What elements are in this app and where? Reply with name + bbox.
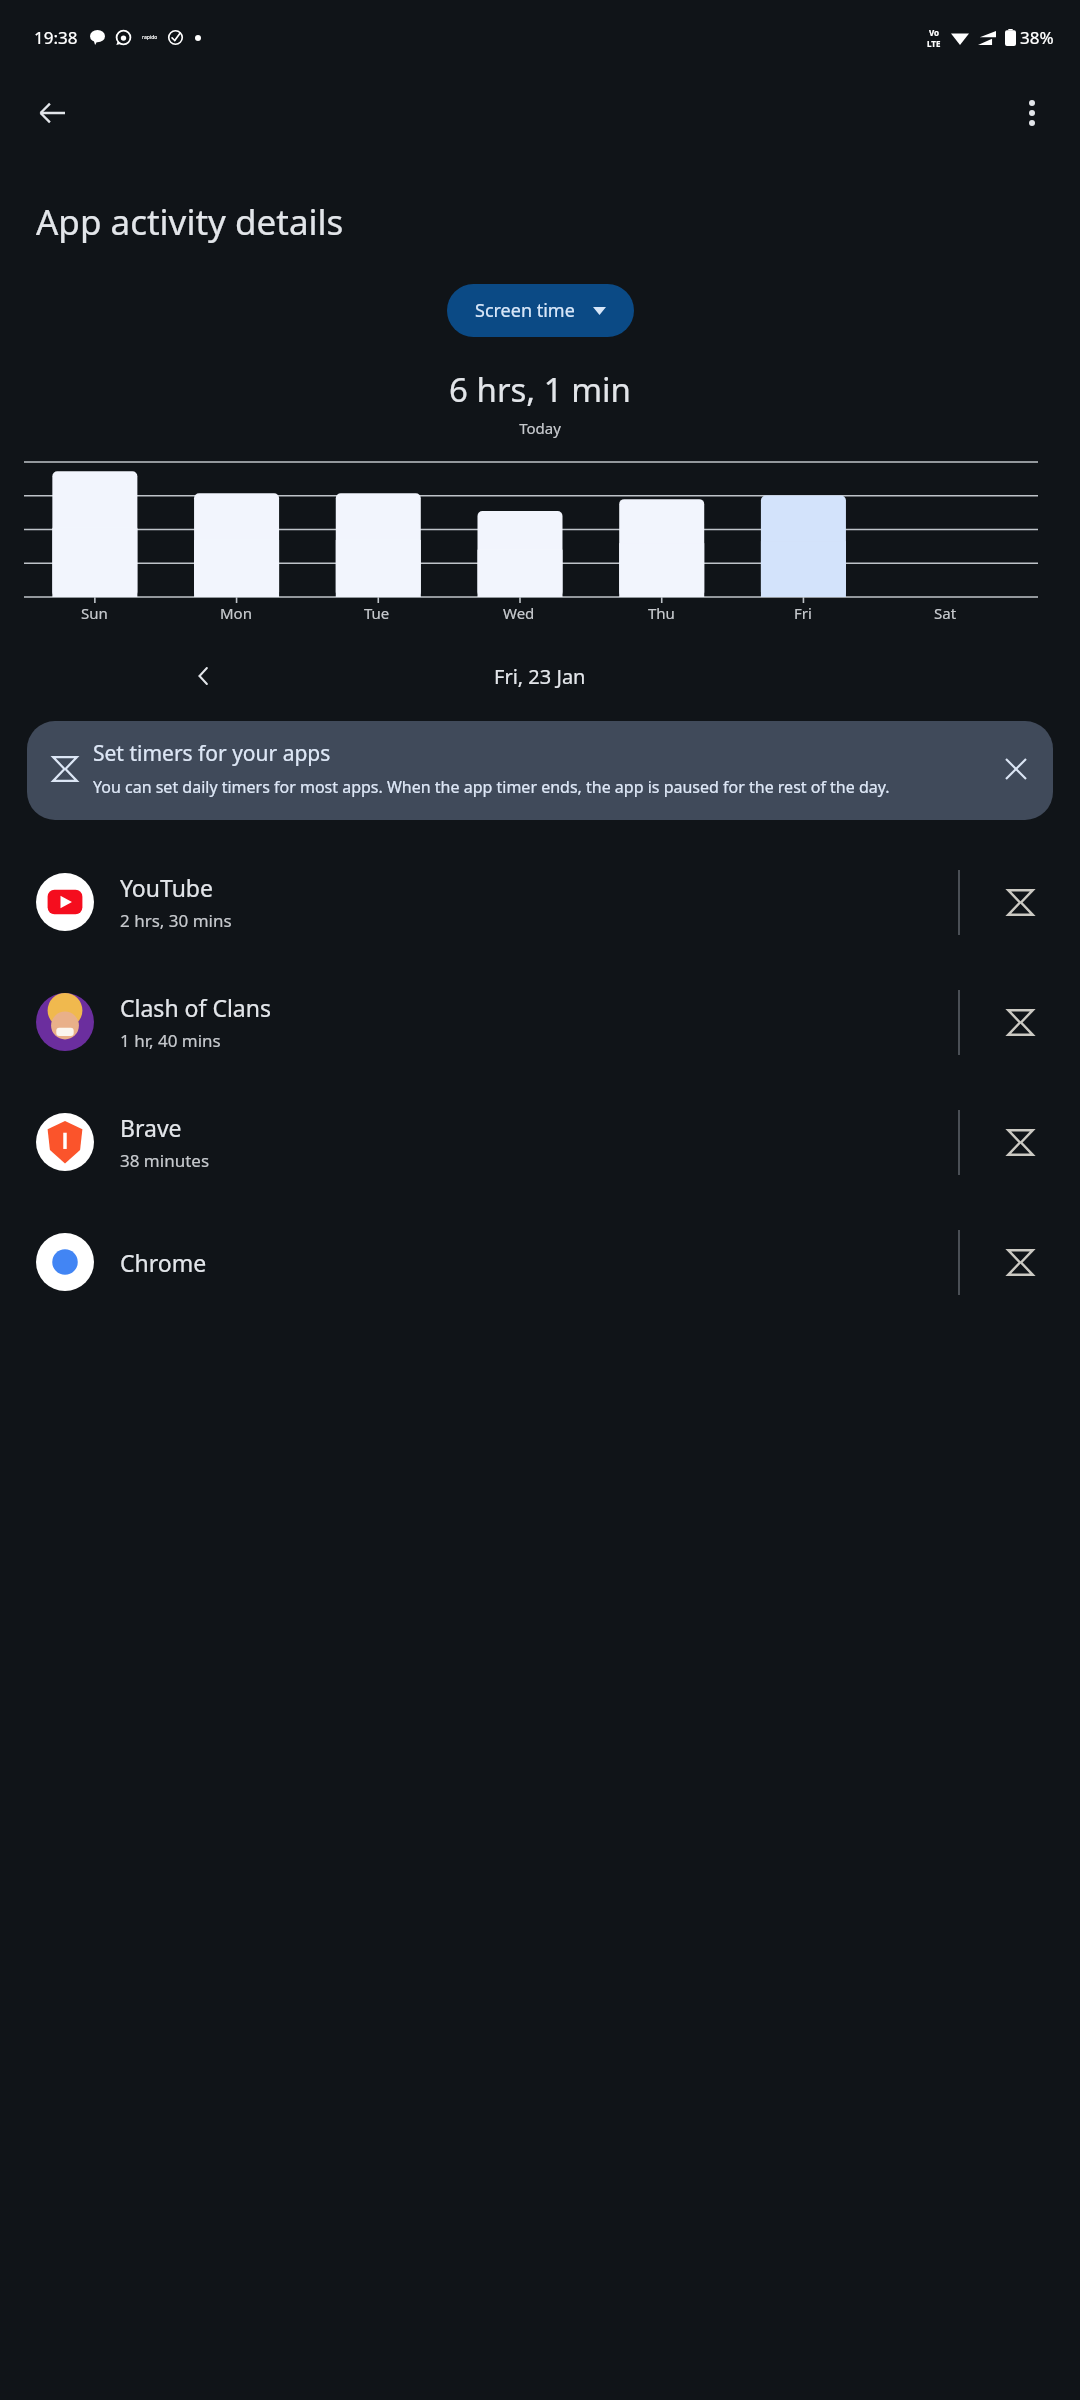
staticText: You can set daily timers for most apps. …: [93, 776, 890, 798]
staticText: Clash of Clans: [120, 992, 271, 1023]
staticText: Vo: [929, 27, 940, 38]
button[interactable]: Set timer for Brave: [960, 1082, 1080, 1202]
staticText: Wed: [503, 603, 535, 623]
button[interactable]: Set timer for Chrome: [960, 1202, 1080, 1322]
staticText: App activity details: [36, 198, 344, 246]
staticText: Fri: [794, 603, 812, 623]
button[interactable]: Set timers for your apps: [27, 721, 1053, 820]
staticText: 38 minutes: [120, 1149, 210, 1172]
staticText: Tue: [364, 603, 390, 623]
staticText: 19:38: [34, 26, 78, 49]
button[interactable]: Back: [24, 85, 80, 141]
button[interactable]: Previous day: [180, 652, 228, 700]
staticText: 1 hr, 40 mins: [120, 1029, 221, 1052]
staticText: Chrome: [120, 1247, 207, 1278]
button[interactable]: Dismiss: [993, 746, 1039, 792]
staticText: Mon: [220, 603, 252, 623]
staticText: Sun: [81, 603, 108, 623]
staticText: rapido: [142, 34, 158, 41]
staticText: 38%: [1020, 26, 1054, 49]
staticText: LTE: [927, 38, 941, 49]
staticText: Set timers for your apps: [93, 739, 331, 768]
button[interactable]: Chrome: [0, 1202, 1080, 1322]
button[interactable]: YouTube: [0, 842, 1080, 962]
staticText: Sat: [934, 603, 957, 623]
staticText: 6 hrs, 1 min: [0, 367, 1080, 412]
staticText: YouTube: [120, 872, 213, 903]
staticText: Today: [0, 418, 1080, 438]
button[interactable]: Screen time: [447, 284, 634, 337]
button[interactable]: Set timer for Clash of Clans: [960, 962, 1080, 1082]
staticText: Screen time: [475, 298, 575, 323]
button[interactable]: More options: [1004, 85, 1060, 141]
button[interactable]: Clash of Clans: [0, 962, 1080, 1082]
staticText: 2 hrs, 30 mins: [120, 909, 232, 932]
staticText: Thu: [648, 603, 675, 623]
staticText: Fri, 23 Jan: [494, 663, 586, 690]
staticText: Brave: [120, 1112, 182, 1143]
button[interactable]: Brave: [0, 1082, 1080, 1202]
button[interactable]: Set timer for YouTube: [960, 842, 1080, 962]
